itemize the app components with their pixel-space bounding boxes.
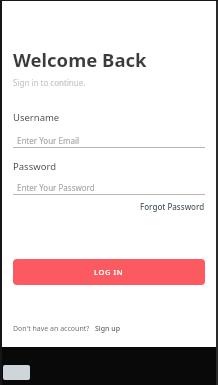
staticText: Sign in to continue. [13,77,86,88]
staticText: Welcome Back [13,47,147,72]
button[interactable]: Sign up [95,324,121,334]
staticText: Password [13,160,56,173]
staticText: Don't have an account? [13,324,90,334]
staticText: Enter Your Password [17,182,95,193]
staticText: Enter Your Email [17,135,80,146]
staticText: LOG IN [94,267,124,277]
staticText: Username [13,111,60,124]
button[interactable]: LOG IN [13,259,205,285]
button[interactable]: Forgot Password [140,201,205,212]
